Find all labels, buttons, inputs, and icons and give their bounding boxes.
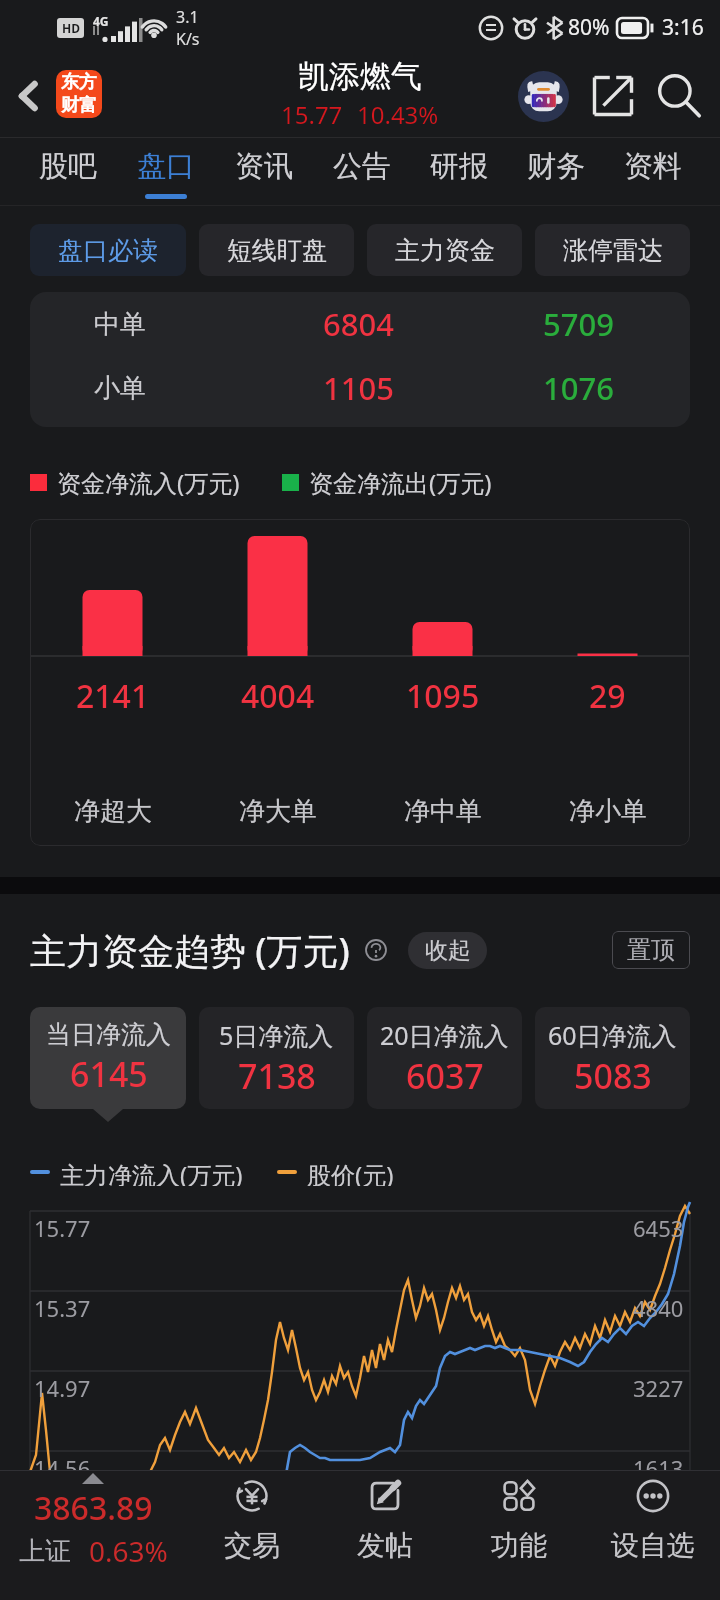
staticText: 3:16 bbox=[662, 13, 704, 42]
staticText: 1076 bbox=[543, 367, 614, 409]
staticText: 研报 bbox=[430, 148, 488, 185]
staticText: 4840 bbox=[633, 1293, 684, 1323]
staticText: 5083 bbox=[574, 1053, 652, 1099]
button[interactable]: 资料 bbox=[604, 137, 701, 206]
button[interactable]: 收起 bbox=[408, 932, 487, 969]
staticText: 资金净流出(万元) bbox=[309, 466, 492, 499]
staticText: 盘口必读 bbox=[58, 235, 158, 266]
staticText: 0.63% bbox=[89, 1532, 168, 1570]
staticText: 置顶 bbox=[627, 935, 675, 965]
button[interactable]: 60日净流入 bbox=[535, 1007, 690, 1109]
staticText: 公告 bbox=[333, 148, 391, 185]
button[interactable]: 3863.89 bbox=[0, 1470, 185, 1600]
button[interactable]: 交易 bbox=[185, 1470, 318, 1600]
button[interactable]: 股吧 bbox=[19, 137, 117, 206]
staticText: 中单 bbox=[94, 308, 146, 341]
staticText: 东方 bbox=[61, 71, 97, 94]
staticText: 交易 bbox=[224, 1528, 280, 1563]
button[interactable]: 研报 bbox=[410, 137, 507, 206]
button[interactable]: 发帖 bbox=[318, 1470, 452, 1600]
staticText: 1095 bbox=[406, 674, 480, 718]
button[interactable]: Help bbox=[364, 938, 388, 962]
staticText: 6145 bbox=[70, 1051, 148, 1097]
button[interactable]: Back bbox=[2, 70, 54, 122]
staticText: 功能 bbox=[491, 1528, 547, 1563]
staticText: 净小单 bbox=[569, 795, 647, 828]
button[interactable]: 当日净流入 bbox=[30, 1007, 186, 1109]
staticText: 短线盯盘 bbox=[227, 235, 327, 266]
staticText: 资金净流入(万元) bbox=[57, 466, 240, 499]
staticText: 10.43% bbox=[357, 98, 439, 131]
staticText: 股价(元) bbox=[307, 1158, 394, 1186]
button[interactable]: 涨停雷达 bbox=[535, 224, 690, 276]
button[interactable]: 功能 bbox=[452, 1470, 586, 1600]
staticText: 6453 bbox=[633, 1213, 684, 1243]
button[interactable]: 设自选 bbox=[586, 1470, 720, 1600]
button[interactable]: 20日净流入 bbox=[367, 1007, 522, 1109]
button[interactable]: 短线盯盘 bbox=[199, 224, 354, 276]
staticText: 14.97 bbox=[34, 1373, 91, 1403]
button[interactable]: 东方 bbox=[56, 70, 102, 118]
staticText: 6804 bbox=[323, 303, 394, 345]
staticText: 资料 bbox=[624, 148, 682, 185]
staticText: 设自选 bbox=[611, 1528, 695, 1563]
staticText: 29 bbox=[589, 674, 626, 718]
staticText: 净大单 bbox=[239, 795, 317, 828]
staticText: 当日净流入 bbox=[46, 1019, 171, 1050]
staticText: 2141 bbox=[76, 674, 150, 718]
staticText: 发帖 bbox=[357, 1528, 413, 1563]
staticText: 15.37 bbox=[34, 1293, 91, 1323]
button[interactable]: 盘口必读 bbox=[30, 224, 186, 276]
staticText: 上证 bbox=[19, 1535, 71, 1568]
staticText: 涨停雷达 bbox=[563, 235, 663, 266]
staticText: 凯添燃气 bbox=[298, 57, 422, 96]
button[interactable]: Search bbox=[646, 64, 712, 128]
button[interactable]: 盘口 bbox=[117, 137, 215, 206]
staticText: 主力资金趋势 (万元) bbox=[30, 926, 350, 975]
button[interactable]: 置顶 bbox=[612, 931, 690, 969]
staticText: 4004 bbox=[241, 674, 315, 718]
button[interactable]: 公告 bbox=[313, 137, 410, 206]
staticText: 股吧 bbox=[39, 148, 97, 185]
staticText: 80% bbox=[568, 13, 610, 42]
staticText: 20日净流入 bbox=[380, 1018, 509, 1052]
button[interactable]: AI assistant bbox=[506, 64, 580, 128]
staticText: 财务 bbox=[527, 148, 585, 185]
staticText: 1105 bbox=[323, 367, 394, 409]
button[interactable]: 主力资金 bbox=[367, 224, 522, 276]
button[interactable]: 财务 bbox=[507, 137, 604, 206]
button[interactable]: 资讯 bbox=[215, 137, 313, 206]
staticText: 3863.89 bbox=[34, 1486, 153, 1530]
staticText: 5日净流入 bbox=[219, 1018, 334, 1052]
button[interactable]: Share bbox=[580, 64, 646, 128]
staticText: 15.77 bbox=[281, 98, 343, 131]
staticText: 1613 bbox=[633, 1453, 684, 1483]
staticText: 盘口 bbox=[137, 148, 195, 185]
staticText: 3227 bbox=[633, 1373, 684, 1403]
staticText: 财富 bbox=[61, 94, 97, 117]
staticText: 6037 bbox=[406, 1053, 484, 1099]
staticText: 3.1 bbox=[176, 6, 199, 28]
staticText: 净中单 bbox=[404, 795, 482, 828]
staticText: 15.77 bbox=[34, 1213, 91, 1243]
staticText: 主力净流入(万元) bbox=[60, 1158, 243, 1186]
staticText: 小单 bbox=[94, 372, 146, 405]
staticText: 资讯 bbox=[235, 148, 293, 185]
staticText: 7138 bbox=[238, 1053, 316, 1099]
staticText: 14.56 bbox=[34, 1453, 91, 1483]
staticText: 5709 bbox=[543, 303, 614, 345]
staticText: HD bbox=[62, 20, 80, 36]
staticText: 4G bbox=[93, 13, 109, 29]
staticText: 60日净流入 bbox=[548, 1018, 677, 1052]
staticText: K/s bbox=[176, 28, 200, 50]
staticText: 收起 bbox=[425, 936, 471, 965]
button[interactable]: 5日净流入 bbox=[199, 1007, 354, 1109]
staticText: 主力资金 bbox=[395, 235, 495, 266]
staticText: 净超大 bbox=[74, 795, 152, 828]
